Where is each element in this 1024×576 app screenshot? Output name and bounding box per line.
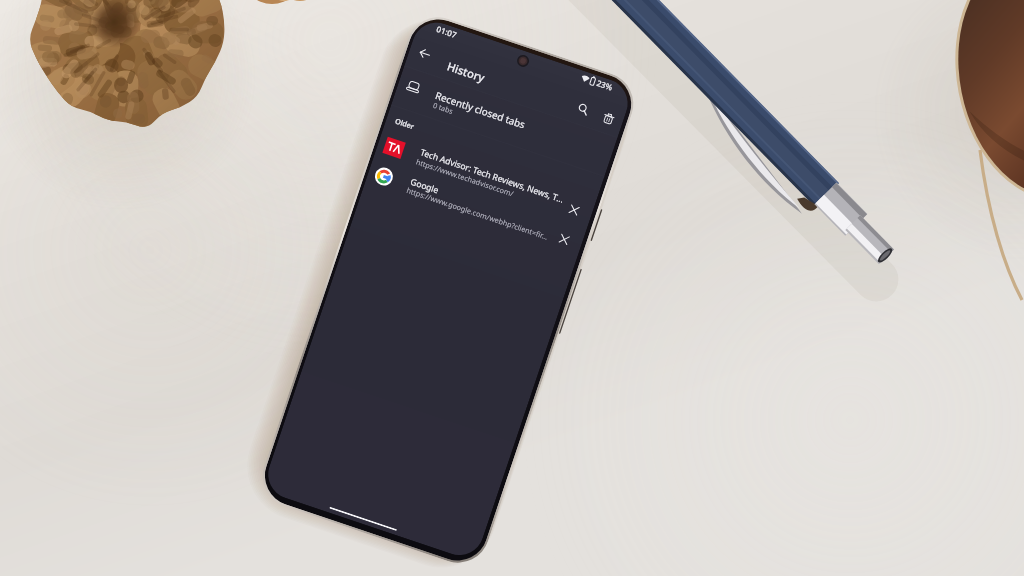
button[interactable]	[391, 66, 617, 176]
staticText: Google	[409, 176, 441, 197]
button[interactable]	[374, 128, 597, 228]
button[interactable]	[364, 157, 587, 257]
staticText: https://www.techadvisor.com/	[415, 156, 516, 199]
button[interactable]: Search	[574, 100, 592, 117]
staticText: 23%	[595, 77, 614, 92]
button[interactable]: Remove from history	[555, 230, 573, 248]
staticText: 0 tabs	[432, 100, 455, 116]
staticText: 01:07	[435, 23, 459, 40]
button[interactable]: Back	[415, 44, 433, 62]
button[interactable]: Clear browsing data	[599, 109, 617, 127]
staticText: Recently closed tabs	[434, 88, 528, 131]
staticText: https://www.google.com/webhp?client=fir…	[405, 185, 550, 242]
button[interactable]: Remove from history	[565, 201, 583, 219]
staticText: Tech Advisor: Tech Reviews, News, T…	[419, 146, 566, 206]
staticText: Older	[394, 116, 416, 131]
staticText: History	[445, 58, 487, 85]
